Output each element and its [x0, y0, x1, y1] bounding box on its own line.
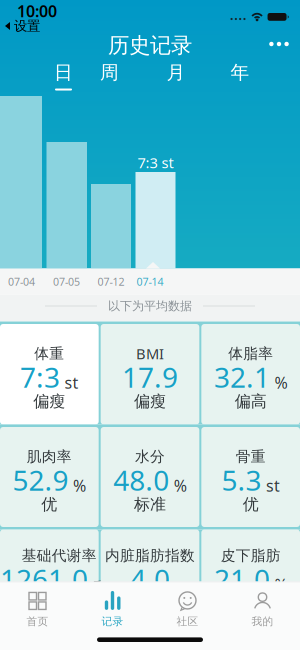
button[interactable]: 07-12	[97, 274, 124, 289]
button[interactable]: 月	[166, 61, 185, 84]
staticText: 内脏脂肪指数	[105, 546, 195, 564]
staticText: 首页	[26, 615, 48, 628]
staticText: %	[274, 574, 287, 595]
button[interactable]: 07-05	[53, 274, 80, 289]
button[interactable]: 骨重	[201, 427, 300, 527]
staticText: 日	[54, 61, 73, 84]
staticText: 07-12	[97, 274, 124, 289]
staticText: 10:00	[17, 0, 57, 22]
button[interactable]: 基础代谢率	[0, 529, 99, 650]
button[interactable]: 我的	[225, 591, 300, 628]
staticText: 优	[41, 495, 57, 514]
button[interactable]: 记录	[75, 591, 150, 628]
staticText: 优	[243, 495, 259, 514]
staticText: 皮下脂肪	[221, 546, 281, 564]
button[interactable]: 日	[54, 61, 73, 84]
button[interactable]: 07-04	[8, 274, 35, 289]
staticText: 32.1	[214, 358, 270, 396]
staticText: 标准	[235, 594, 267, 613]
staticText: %	[174, 475, 187, 496]
staticText: 骨重	[236, 447, 266, 465]
staticText: st	[65, 372, 79, 393]
staticText: 社区	[176, 615, 198, 628]
staticText: 达标	[43, 594, 75, 613]
staticText: 千卡	[92, 579, 118, 595]
staticText: 48.0	[113, 461, 169, 499]
staticText: 年	[230, 61, 249, 84]
staticText: 我的	[251, 615, 273, 628]
staticText: st	[266, 475, 280, 496]
staticText: 以下为平均数据	[108, 299, 192, 313]
staticText: 基础代谢率	[22, 546, 97, 564]
button[interactable]: 内脏脂肪指数	[101, 529, 199, 650]
staticText: 52.9	[13, 461, 69, 499]
staticText: 周	[100, 61, 119, 84]
staticText: 07-04	[8, 274, 35, 289]
button[interactable]: 水分	[101, 427, 199, 527]
staticText: 偏高	[235, 392, 267, 411]
button[interactable]: 皮下脂肪	[201, 529, 300, 650]
button[interactable]: 首页	[0, 591, 75, 628]
button[interactable]: 肌肉率	[0, 427, 99, 527]
staticText: 偏瘦	[134, 392, 166, 411]
button[interactable]	[269, 42, 289, 46]
staticText: 肌肉率	[27, 447, 72, 465]
staticText: %	[73, 475, 86, 496]
staticText: 07-05	[53, 274, 80, 289]
button[interactable]: 体重	[0, 324, 99, 424]
staticText: 21.0	[214, 560, 270, 598]
button[interactable]: 社区	[150, 591, 225, 628]
button[interactable]: 设置	[4, 18, 40, 34]
staticText: 标准	[134, 495, 166, 514]
staticText: 7:3 st	[137, 153, 173, 172]
staticText: 体重	[34, 344, 64, 362]
staticText: 记录	[101, 615, 123, 628]
button[interactable]: 体脂率	[201, 324, 300, 424]
staticText: 17.9	[122, 358, 178, 396]
staticText: %	[274, 372, 287, 393]
staticText: 07-14	[136, 274, 163, 289]
staticText: 月	[166, 61, 185, 84]
staticText: 1261.0	[0, 560, 88, 598]
staticText: 7:3	[20, 358, 60, 396]
button[interactable]: BMI	[101, 324, 199, 424]
button[interactable]: 年	[230, 61, 249, 84]
staticText: 历史记录	[108, 32, 192, 59]
button[interactable]: 07-14	[136, 274, 163, 289]
staticText: BMI	[136, 344, 164, 363]
staticText: 体脂率	[228, 344, 273, 362]
staticText: 5.3	[221, 461, 261, 499]
button[interactable]: 周	[100, 61, 119, 84]
staticText: 水分	[135, 447, 165, 465]
staticText: 4.0	[130, 560, 170, 598]
staticText: 偏瘦	[33, 392, 65, 411]
staticText: 设置	[14, 18, 40, 34]
